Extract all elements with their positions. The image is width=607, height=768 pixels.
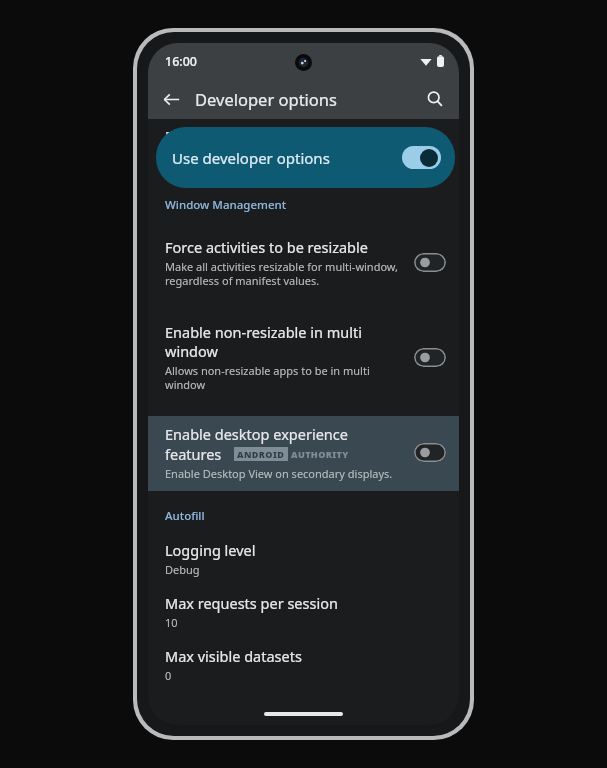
staticText: Developer options [195, 88, 337, 110]
staticText: AUTHORITY [291, 448, 349, 460]
staticText: Enable Desktop View on secondary display… [165, 466, 393, 481]
staticText: Max requests per session [165, 593, 338, 613]
button[interactable]: Max requests per session [148, 593, 459, 630]
staticText: 0 [165, 668, 172, 683]
staticText: ANDROID [237, 448, 285, 460]
button[interactable]: Toggle off [414, 348, 446, 367]
button[interactable]: Enable non-resizable in multi window [148, 314, 459, 402]
staticText: Autofill [165, 508, 205, 524]
staticText: Force RTL layout direction [165, 126, 341, 146]
button[interactable]: Back [154, 82, 188, 116]
staticText: Force screen layout direction to RTL loc… [165, 148, 409, 177]
staticText: Force activities to be resizable [165, 237, 368, 257]
button[interactable]: Max visible datasets [148, 646, 459, 683]
button[interactable]: Search [418, 82, 452, 116]
button[interactable]: Force activities to be resizable [148, 229, 459, 298]
button[interactable]: Toggle off [414, 253, 446, 272]
staticText: Enable non-resizable in multi window [165, 322, 362, 361]
staticText: Max visible datasets [165, 646, 302, 666]
staticText: Window Management [165, 197, 287, 213]
staticText: 10 [165, 615, 178, 630]
staticText: Use developer options [172, 148, 402, 168]
staticText: Make all activities resizable for multi-… [165, 259, 399, 288]
staticText: Allows non-resizable apps to be in multi… [165, 363, 370, 392]
staticText: 16:00 [165, 53, 198, 70]
staticText: Debug [165, 562, 200, 577]
staticText: features [165, 444, 222, 464]
button[interactable]: Toggle off [414, 443, 446, 462]
button[interactable]: Enable desktop experience [148, 416, 459, 491]
button[interactable]: Logging level [148, 540, 459, 577]
staticText: Enable desktop experience [165, 424, 348, 444]
button[interactable]: Force RTL layout direction [148, 119, 459, 177]
staticText: Logging level [165, 540, 256, 560]
button[interactable]: Use developer options [156, 127, 455, 188]
button[interactable]: Use developer options toggle, on [402, 146, 441, 169]
